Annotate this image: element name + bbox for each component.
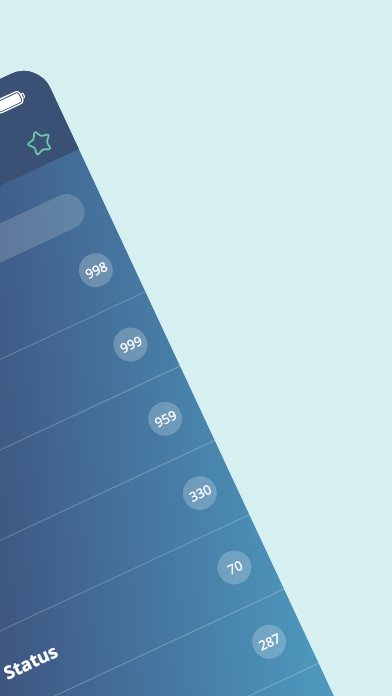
button[interactable]: Orders [0, 218, 145, 457]
button[interactable]: Payments [0, 366, 215, 605]
staticText: 959 [151, 406, 180, 432]
button[interactable] [0, 188, 90, 368]
staticText: Delivery Status [0, 638, 62, 696]
staticText: 70 [224, 556, 245, 579]
button[interactable]: Account [0, 589, 319, 696]
other: Battery [0, 87, 28, 115]
staticText: 999 [117, 331, 145, 357]
button[interactable]: Delivery Status [0, 515, 284, 696]
staticText: 998 [82, 257, 110, 283]
button[interactable]: Offers [0, 441, 249, 680]
button[interactable]: Settings [0, 664, 353, 696]
other: Favorites [21, 124, 58, 161]
staticText: 330 [186, 480, 214, 506]
button[interactable]: Wishlist [0, 292, 180, 531]
staticText: 287 [255, 628, 284, 654]
